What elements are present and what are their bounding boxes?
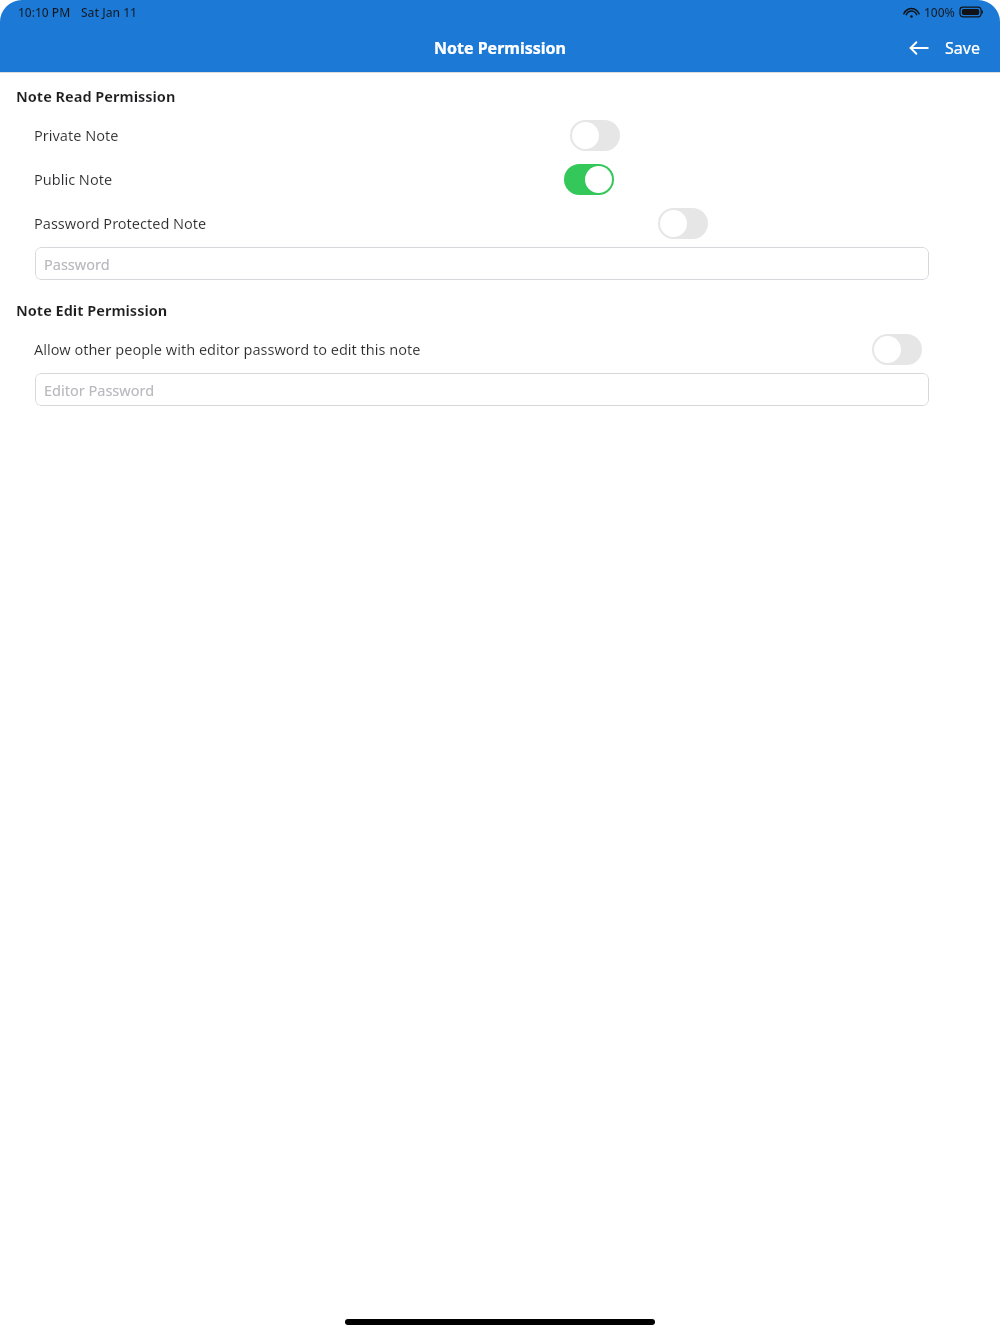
button[interactable]: Off: [570, 120, 620, 151]
staticText: Save: [945, 37, 980, 59]
button[interactable]: Back: [899, 28, 939, 68]
staticText: Sat Jan 11: [81, 4, 137, 20]
staticText: Private Note: [34, 125, 119, 145]
button[interactable]: Allow other people with editor password …: [0, 327, 1000, 371]
button[interactable]: Private Note: [0, 113, 1000, 157]
button[interactable]: Password Protected Note: [0, 201, 1000, 245]
staticText: Note Read Permission: [16, 86, 176, 106]
button[interactable]: Off: [658, 208, 708, 239]
button[interactable]: Password: [35, 247, 929, 280]
staticText: 100%: [924, 4, 955, 20]
button[interactable]: On: [564, 164, 614, 195]
staticText: Note Edit Permission: [16, 300, 168, 320]
staticText: Password Protected Note: [34, 213, 207, 233]
staticText: 10:10 PM: [18, 4, 71, 20]
staticText: Note Permission: [434, 37, 566, 59]
button[interactable]: Public Note: [0, 157, 1000, 201]
button[interactable]: Off: [872, 334, 922, 365]
staticText: Password: [44, 254, 110, 274]
staticText: Editor Password: [44, 380, 155, 400]
button[interactable]: Editor Password: [35, 373, 929, 406]
button[interactable]: Save: [939, 29, 986, 67]
staticText: Allow other people with editor password …: [34, 339, 421, 359]
staticText: Public Note: [34, 169, 113, 189]
